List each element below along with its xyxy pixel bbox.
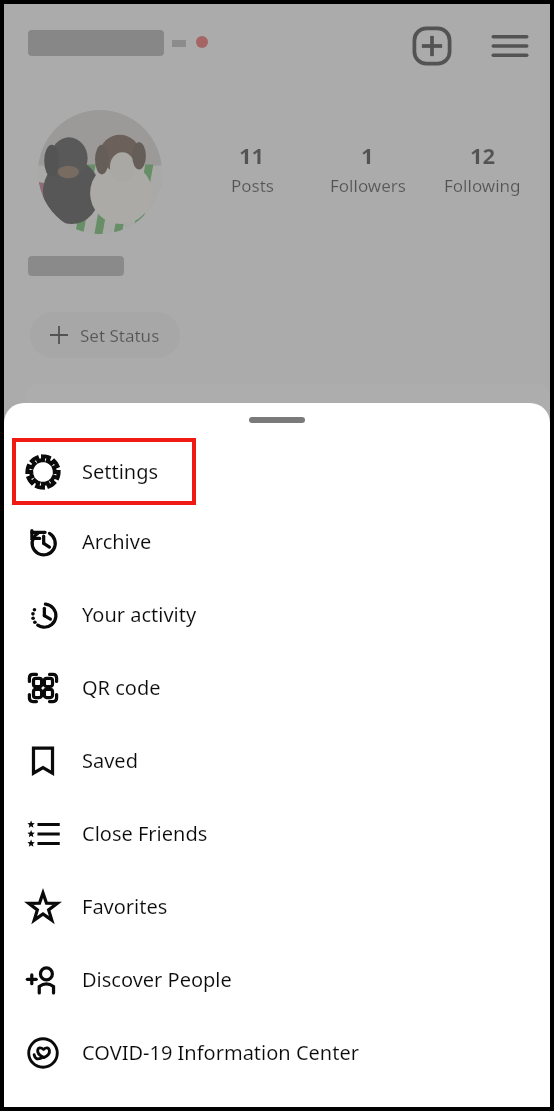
staticText: 1	[361, 140, 374, 170]
button[interactable]: Menu	[490, 26, 530, 66]
button[interactable]: Saved	[4, 724, 550, 797]
button[interactable]: 11	[194, 140, 310, 197]
staticText: Settings	[82, 458, 159, 485]
button[interactable]: COVID-19 Information Center	[4, 1016, 550, 1089]
staticText: Favorites	[82, 893, 168, 920]
button[interactable]: Create	[410, 24, 454, 68]
button[interactable]: Your activity	[4, 578, 550, 651]
button[interactable]: QR code	[4, 651, 550, 724]
staticText: Saved	[82, 747, 138, 774]
button[interactable]: 12	[425, 140, 540, 197]
button[interactable]: Favorites	[4, 870, 550, 943]
staticText: Your activity	[82, 601, 197, 628]
button[interactable]: 1	[310, 140, 425, 197]
staticText: QR code	[82, 674, 161, 701]
staticText: Edit profile	[245, 402, 332, 425]
staticText: Posts	[231, 174, 274, 197]
button[interactable]: Edit profile	[26, 384, 550, 454]
staticText: 12	[470, 140, 496, 170]
staticText: Discover People	[82, 966, 232, 993]
button[interactable]: Archive	[4, 505, 550, 578]
staticText: Archive	[82, 528, 152, 555]
staticText: Close Friends	[82, 820, 208, 847]
button[interactable]: Settings	[4, 438, 550, 505]
staticText: Following	[444, 174, 521, 197]
button[interactable]: Set Status	[30, 312, 180, 358]
button[interactable]: Close Friends	[4, 797, 550, 870]
button[interactable]	[38, 110, 162, 234]
button[interactable]: Discover People	[4, 943, 550, 1016]
staticText: 11	[239, 140, 265, 170]
staticText: Followers	[330, 174, 406, 197]
staticText: Set Status	[80, 324, 160, 347]
staticText: COVID-19 Information Center	[82, 1039, 359, 1066]
